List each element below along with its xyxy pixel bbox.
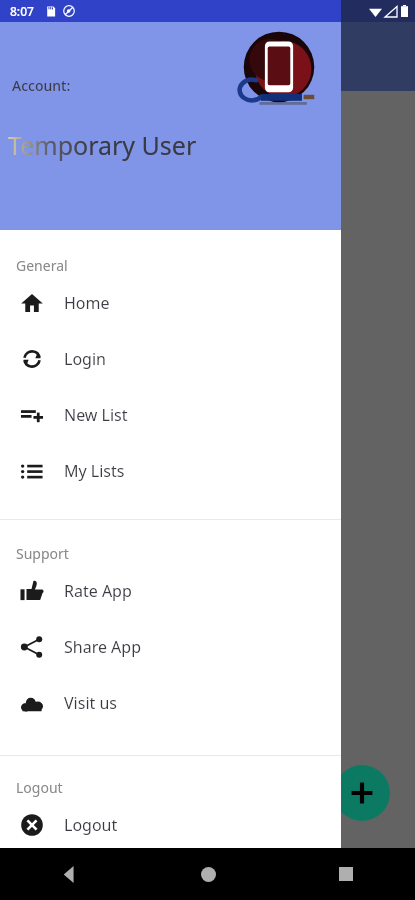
staticText: Home	[64, 292, 110, 314]
button[interactable]: Share App	[0, 619, 341, 675]
staticText: Login	[64, 348, 106, 370]
staticText: Logout	[64, 814, 118, 836]
staticText: Rate App	[64, 580, 132, 602]
staticText: Share App	[64, 636, 142, 658]
button[interactable]: Login	[0, 331, 341, 387]
staticText: Support	[16, 544, 69, 563]
button[interactable]: Add new list	[334, 765, 390, 821]
staticText: 8:07	[10, 3, 34, 19]
button[interactable]: Visit us	[0, 675, 341, 731]
button[interactable]: Logout	[0, 797, 341, 853]
staticText: My Lists	[64, 460, 125, 482]
staticText: New List	[64, 404, 128, 426]
staticText: General	[16, 256, 68, 275]
staticText: Temporary User	[8, 128, 197, 162]
button[interactable]: My Lists	[0, 443, 341, 499]
button[interactable]: New List	[0, 387, 341, 443]
button[interactable]: Rate App	[0, 563, 341, 619]
staticText: Visit us	[64, 692, 118, 714]
button[interactable]: Recent apps	[277, 848, 415, 900]
button[interactable]: Home	[0, 275, 341, 331]
button[interactable]: Home	[139, 848, 277, 900]
staticText: Account:	[12, 76, 71, 95]
button[interactable]: Back	[0, 848, 139, 900]
staticText: Logout	[16, 778, 63, 797]
